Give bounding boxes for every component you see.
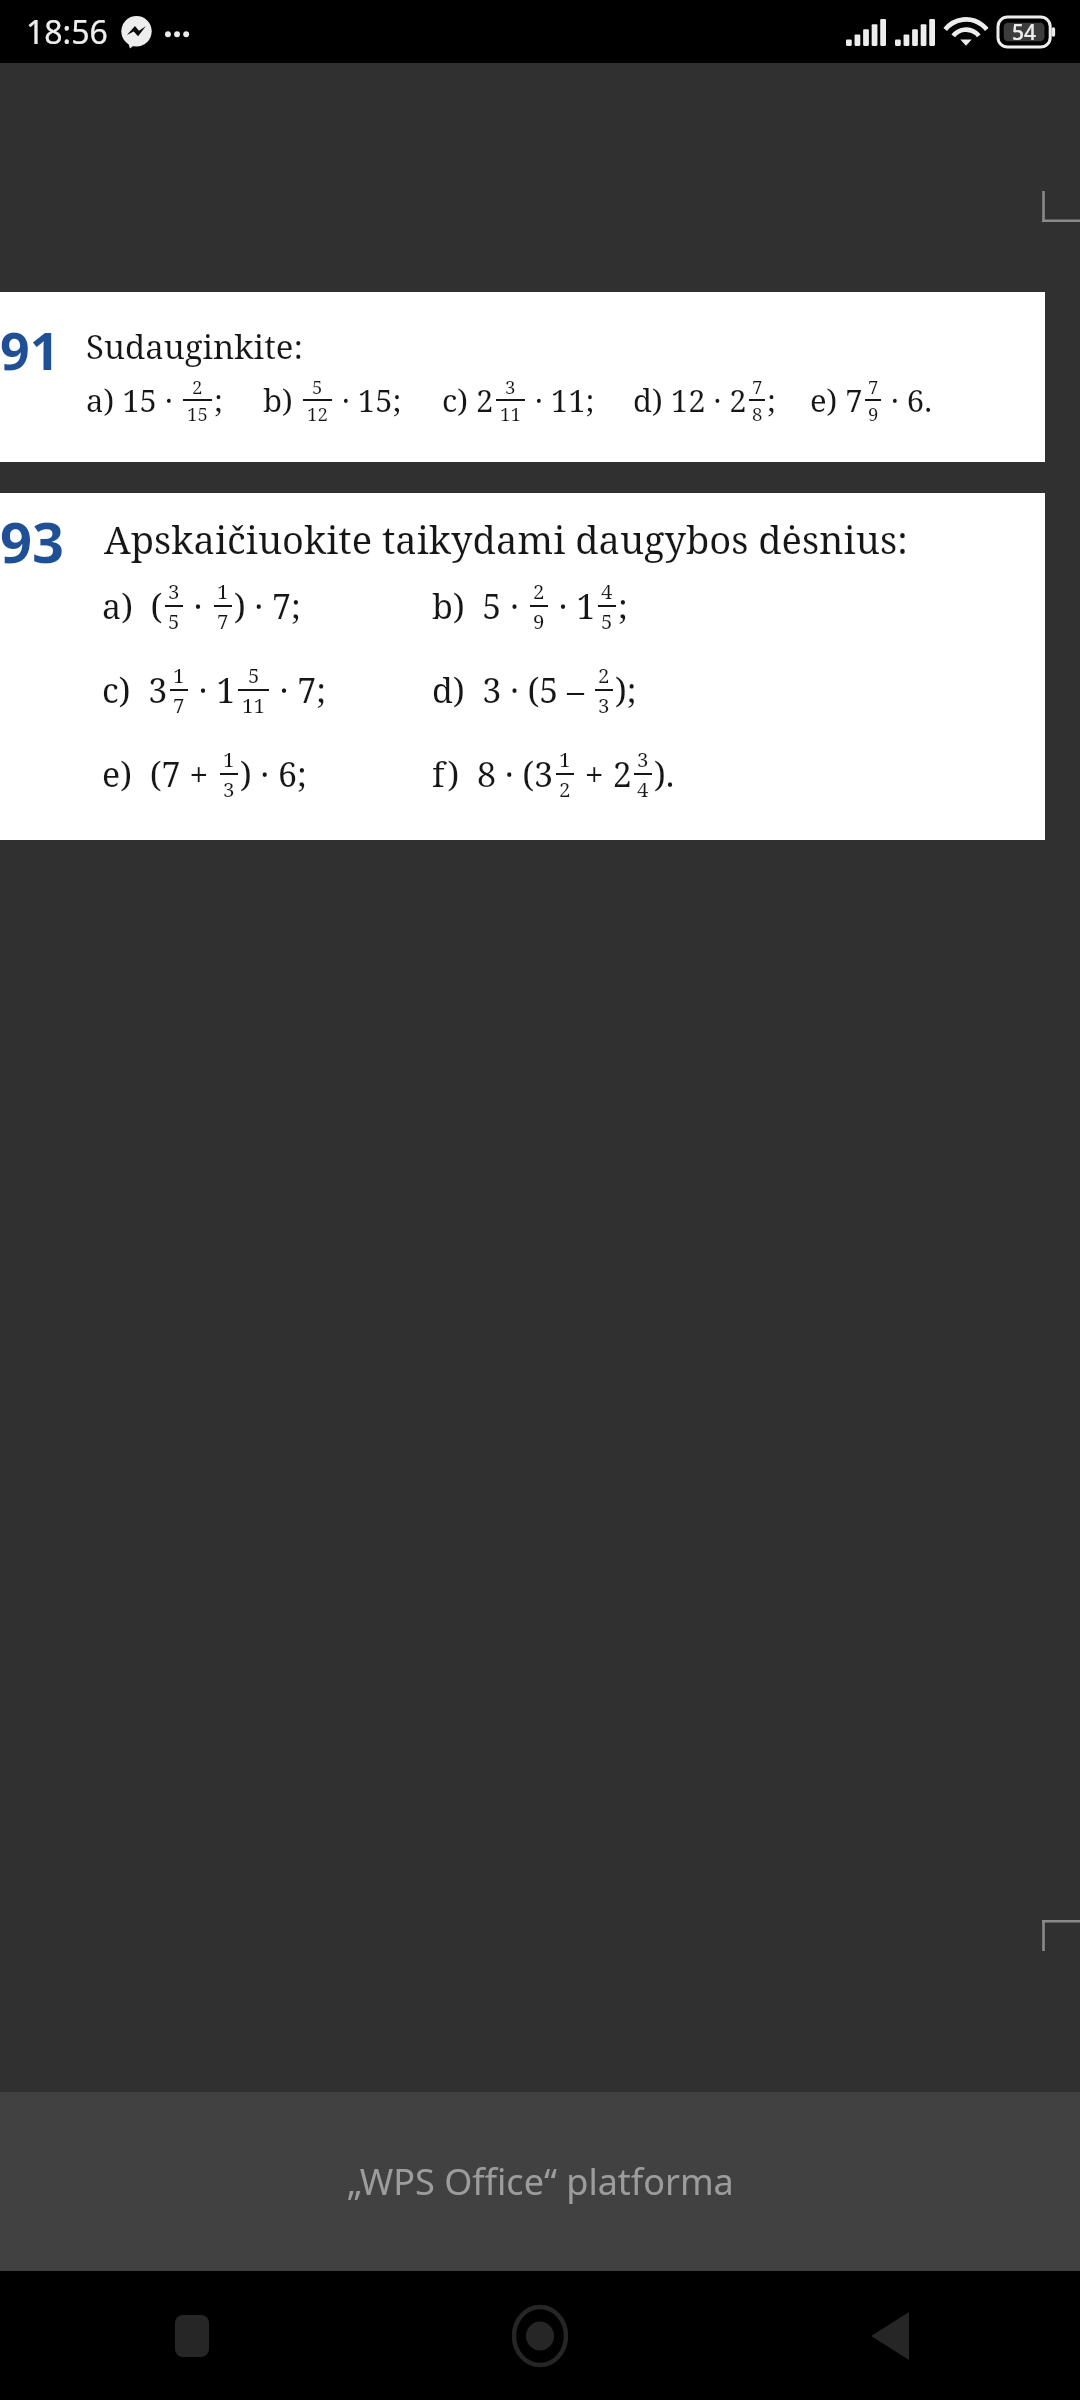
staticText: · 15; [334,379,402,421]
staticText: 3 [505,374,516,399]
staticText: d) 12 · 2 [633,379,747,421]
staticText: b) [263,379,301,421]
staticText: 4 [601,577,613,605]
staticText: 54 [1012,18,1037,47]
staticText: 8 [752,401,763,426]
staticText: + 2 [576,751,632,797]
staticText: 7 [752,374,763,399]
staticText: 9 [868,401,879,426]
button[interactable]: 91 [0,292,1045,462]
staticText: 5 [168,607,180,635]
staticText: 18:56 [26,10,108,54]
staticText: 3 [223,775,235,803]
button[interactable]: Home [360,2271,720,2400]
staticText: Sudauginkite: [86,324,303,369]
staticText: „WPS Office“ platforma [347,2157,734,2206]
staticText: ; [767,379,776,421]
staticText: 5 [601,607,613,635]
staticText: 2 [533,577,545,605]
staticText: 3 [637,745,649,773]
staticText: 9 [533,607,545,635]
staticText: ). [654,751,675,797]
staticText: 1 [173,661,185,689]
staticText: 2 [598,661,610,689]
staticText: 7 [173,691,185,719]
staticText: 93 [0,503,65,579]
staticText: b) 5 · [432,583,528,629]
staticText: 2 [192,374,203,399]
staticText: 4 [637,775,649,803]
staticText: 12 [307,401,328,426]
staticText: 1 [559,745,571,773]
staticText: · [185,583,212,629]
staticText: d) 3 · (5 – [432,667,593,713]
button[interactable]: 93 [0,493,1045,840]
staticText: f) 8 · (3 [432,751,554,797]
staticText: Apskaičiuokite taikydami daugybos dėsniu… [104,513,908,565]
staticText: · 1 [190,667,236,713]
button[interactable]: Back [720,2271,1080,2400]
staticText: c) 2 [442,379,494,421]
staticText: ; [214,379,223,421]
staticText: c) 3 [102,667,168,713]
staticText: 5 [312,374,323,399]
button[interactable]: Recent apps [0,2271,360,2400]
staticText: 3 [598,691,610,719]
staticText: 7 [217,607,229,635]
staticText: 15 [187,401,208,426]
staticText: · 7; [271,667,326,713]
staticText: ; [618,583,628,629]
staticText: · 6. [883,379,932,421]
staticText: e) (7 + [102,751,218,797]
staticText: a) ( [102,583,163,629]
staticText: 2 [559,775,571,803]
staticText: 11 [242,691,265,719]
staticText: 5 [248,661,260,689]
staticText: · 1 [550,583,596,629]
staticText: ) · 7; [234,583,301,629]
staticText: a) 15 · [86,379,181,421]
staticText: 91 [0,314,60,385]
staticText: 7 [868,374,879,399]
staticText: 1 [217,577,229,605]
staticText: 11 [500,401,521,426]
staticText: e) 7 [810,379,863,421]
staticText: 3 [168,577,180,605]
staticText: 1 [223,745,235,773]
staticText: · 11; [527,379,595,421]
staticText: ) · 6; [240,751,307,797]
staticText: ); [615,667,637,713]
